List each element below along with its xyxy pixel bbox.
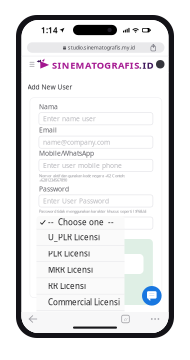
- staticText: SINEMATOGRAFIS: [52, 59, 139, 71]
- button[interactable]: Chat: [142, 286, 162, 306]
- staticText: -- Choose one --: [48, 217, 114, 227]
- staticText: .ID: [139, 59, 154, 71]
- button[interactable]: Enter user mobile phone: [39, 159, 153, 171]
- button[interactable]: PLR Licensi: [36, 246, 124, 261]
- button[interactable]: More: [151, 315, 159, 323]
- staticText: Add New User: [27, 83, 72, 91]
- button[interactable]: Tabs: [121, 315, 130, 323]
- staticText: Password: [39, 184, 69, 193]
- staticText: 1:14: [41, 25, 58, 35]
- button[interactable]: studio.sinematografis.my.id: [27, 42, 164, 53]
- button[interactable]: MRR Licensi: [36, 262, 124, 278]
- staticText: PLR Licensi: [48, 248, 90, 259]
- staticText: Commercial Licensi: [48, 297, 120, 307]
- staticText: +6281234567890: [39, 177, 67, 182]
- staticText: U_PLR Licensi: [48, 232, 100, 242]
- staticText: Password tidak menggunakan karakter khus…: [39, 209, 147, 214]
- staticText: 27: [123, 316, 127, 322]
- button[interactable]: Account: [156, 60, 164, 68]
- staticText: Nomor aktif dan gunakan kode negara +62 …: [39, 173, 125, 178]
- button[interactable]: name@company.com: [39, 136, 153, 148]
- staticText: name@company.com: [43, 138, 110, 147]
- staticText: Rp 500: [44, 291, 55, 296]
- staticText: Mobile/WhatsApp: [39, 149, 94, 158]
- staticText: Enter User Password: [43, 196, 109, 205]
- staticText: Email: [39, 126, 57, 134]
- staticText: RR Licensi: [48, 281, 86, 291]
- staticText: Rp 95: [44, 280, 53, 285]
- staticText: MRR Licensi: [48, 264, 93, 275]
- button[interactable]: Commercial Licensi: [36, 294, 124, 310]
- button[interactable]: RR Licensi: [36, 278, 124, 294]
- button[interactable]: -- Choose one --: [36, 216, 124, 229]
- staticText: studio.sinematografis.my.id: [68, 44, 135, 51]
- button[interactable]: Enter name user: [39, 113, 153, 125]
- button[interactable]: Enter User Password: [39, 195, 153, 207]
- button[interactable]: U_PLR Licensi: [36, 229, 124, 245]
- staticText: Enter name user: [43, 114, 96, 123]
- staticText: Enter user mobile phone: [43, 161, 122, 170]
- button[interactable]: Personal Licensi: [36, 311, 124, 326]
- staticText: Nama: [39, 102, 58, 111]
- button[interactable]: Back: [28, 315, 38, 323]
- button[interactable]: Menu: [28, 60, 35, 68]
